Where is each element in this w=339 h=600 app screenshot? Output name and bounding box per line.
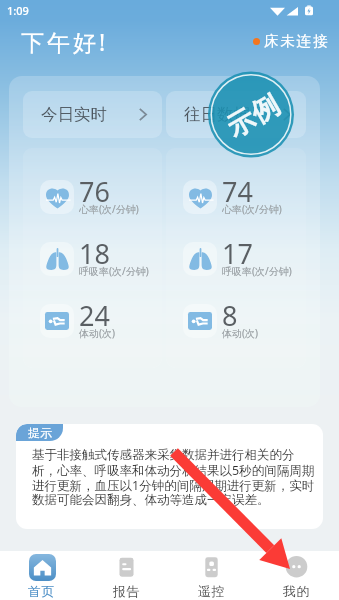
staticText: 提示 [28, 425, 52, 440]
button[interactable]: 今日实时 [23, 91, 162, 138]
staticText: 往日数据 [184, 104, 250, 125]
button[interactable]: 往日数据 [166, 91, 306, 138]
staticText: 1:09 [7, 3, 29, 18]
staticText: 首页 [28, 583, 56, 599]
staticText: 今日实时 [41, 104, 107, 125]
staticText: 心率(次/分钟) [79, 202, 139, 216]
button[interactable]: 17 [166, 228, 306, 290]
button[interactable]: 报告 [84, 551, 169, 600]
staticText: 体动(次) [79, 326, 115, 340]
staticText: 基于非接触式传感器来采集数据并进行相关的分析，心率、呼吸率和体动分析结果以5秒的… [32, 447, 316, 508]
staticText: 74 [222, 173, 253, 210]
button[interactable]: 24 [23, 290, 162, 352]
staticText: 床未连接 [264, 32, 330, 50]
staticText: 8 [222, 297, 238, 334]
staticText: 呼吸率(次/分钟) [79, 264, 149, 278]
staticText: 报告 [113, 583, 141, 599]
other: 示例水印 [208, 72, 294, 157]
button[interactable]: 我的 [254, 551, 339, 600]
staticText: 下午好! [21, 26, 109, 57]
staticText: 示例 [220, 87, 286, 145]
button[interactable]: 8 [166, 290, 306, 352]
staticText: 18 [79, 235, 110, 272]
button[interactable]: 首页 [0, 551, 84, 600]
staticText: 呼吸率(次/分钟) [222, 264, 292, 278]
staticText: 遥控 [198, 583, 226, 599]
staticText: 24 [79, 297, 110, 334]
button[interactable]: 76 [23, 166, 162, 228]
button[interactable]: 18 [23, 228, 162, 290]
button[interactable]: 74 [166, 166, 306, 228]
staticText: 心率(次/分钟) [222, 202, 282, 216]
staticText: 我的 [283, 583, 311, 599]
staticText: 17 [222, 235, 253, 272]
staticText: 76 [79, 173, 110, 210]
staticText: 体动(次) [222, 326, 258, 340]
button[interactable]: 遥控 [169, 551, 254, 600]
